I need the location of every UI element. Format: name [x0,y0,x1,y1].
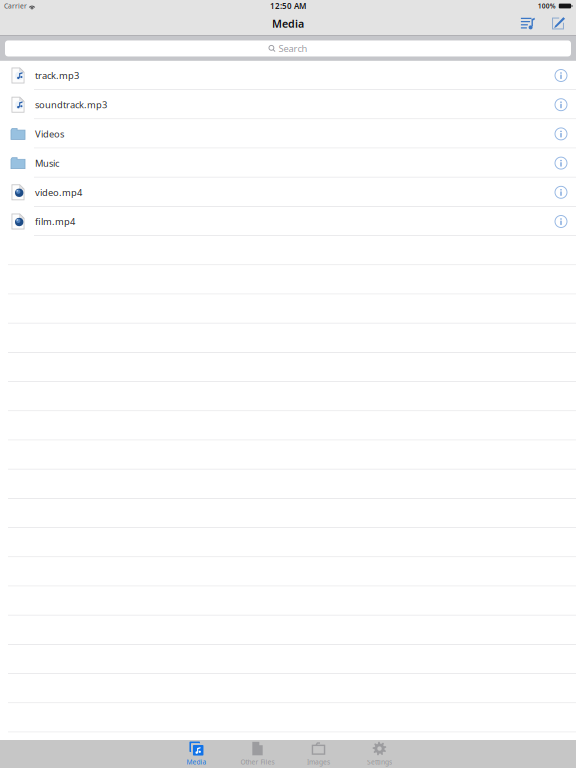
button[interactable]: Compose [546,12,570,35]
button[interactable]: Videos [0,119,576,148]
button[interactable]: Images [288,740,349,768]
staticText: track.mp3 [35,69,79,82]
button[interactable]: Settings [349,740,410,768]
staticText: Music [35,157,59,169]
button[interactable]: Search [5,40,571,56]
staticText: Videos [35,128,64,140]
staticText: Carrier [4,2,27,10]
button[interactable]: film.mp4 [0,207,576,236]
staticText: Settings [367,758,392,766]
staticText: video.mp4 [35,186,82,198]
staticText: 12:50 AM [270,1,306,11]
button[interactable]: Other Files [227,740,288,768]
button[interactable]: Music [0,148,576,178]
button[interactable]: video.mp4 [0,178,576,207]
staticText: Other Files [240,758,274,766]
staticText: Media [272,16,304,31]
staticText: soundtrack.mp3 [35,98,107,111]
button[interactable]: Media [166,740,227,768]
staticText: Search [278,42,307,55]
button[interactable]: soundtrack.mp3 [0,90,576,119]
button[interactable]: Playlists [510,12,546,35]
staticText: Images [307,758,330,766]
staticText: film.mp4 [35,215,75,228]
staticText: 100% [538,2,556,10]
button[interactable]: track.mp3 [0,61,576,90]
staticText: Media [186,758,206,766]
